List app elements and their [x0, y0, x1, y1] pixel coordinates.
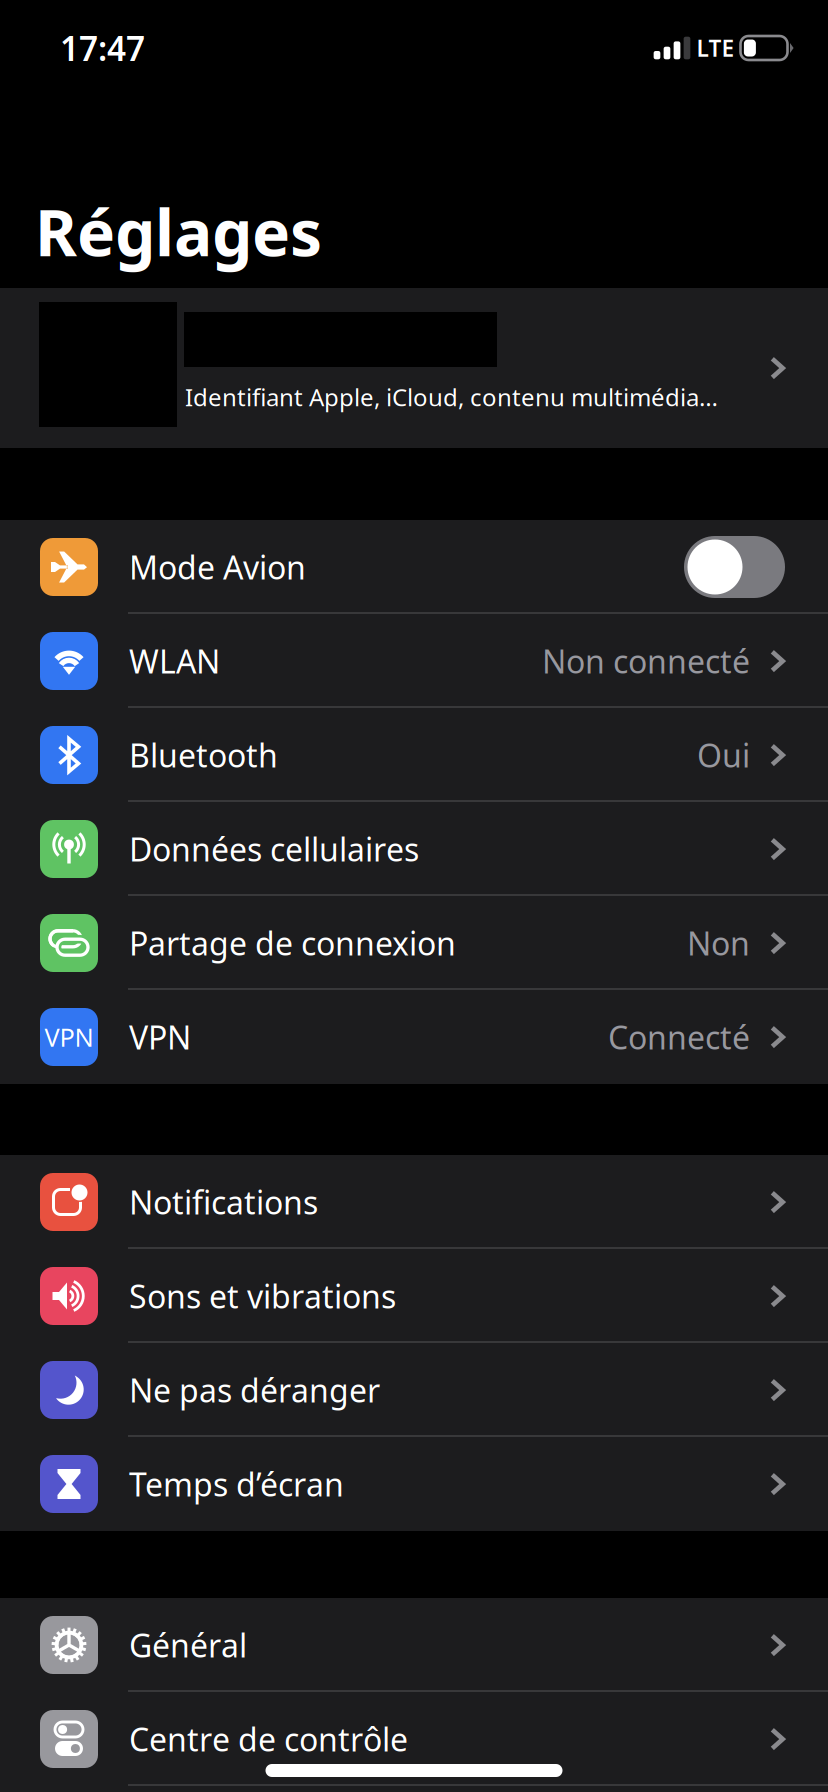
button[interactable]: Notifications — [0, 1155, 828, 1249]
staticText: 17:47 — [60, 26, 145, 70]
button[interactable]: Ne pas déranger — [0, 1343, 828, 1437]
staticText: Oui — [697, 734, 750, 776]
button[interactable]: Mode Avion — [0, 520, 828, 614]
button[interactable]: Centre de contrôle — [0, 1692, 828, 1786]
staticText: VPN — [44, 1020, 93, 1054]
button[interactable]: Données cellulaires — [0, 802, 828, 896]
staticText: Mode Avion — [129, 546, 306, 588]
button[interactable]: Sons et vibrations — [0, 1249, 828, 1343]
staticText: Centre de contrôle — [129, 1718, 408, 1760]
staticText: Non — [687, 922, 750, 964]
staticText: VPN — [129, 1016, 191, 1058]
button[interactable]: VPN — [0, 990, 828, 1084]
button[interactable]: Identifiant Apple, iCloud, contenu multi… — [0, 288, 828, 448]
staticText: Notifications — [129, 1181, 318, 1223]
button[interactable]: WLAN — [0, 614, 828, 708]
staticText: Données cellulaires — [129, 828, 419, 870]
staticText: Ne pas déranger — [129, 1369, 380, 1411]
button[interactable]: Temps d’écran — [0, 1437, 828, 1531]
staticText: Général — [129, 1624, 247, 1666]
button[interactable]: Général — [0, 1598, 828, 1692]
staticText: Sons et vibrations — [129, 1275, 396, 1317]
button[interactable]: Bluetooth — [0, 708, 828, 802]
staticText: Bluetooth — [129, 734, 278, 776]
staticText: Partage de connexion — [129, 922, 456, 964]
staticText: WLAN — [129, 640, 220, 682]
staticText: Connecté — [608, 1016, 750, 1058]
staticText: Temps d’écran — [129, 1463, 344, 1505]
staticText: Non connecté — [542, 640, 750, 682]
button[interactable]: Partage de connexion — [0, 896, 828, 990]
staticText: LTE — [696, 33, 734, 63]
staticText: Identifiant Apple, iCloud, contenu multi… — [185, 381, 718, 413]
staticText: Réglages — [35, 189, 322, 274]
